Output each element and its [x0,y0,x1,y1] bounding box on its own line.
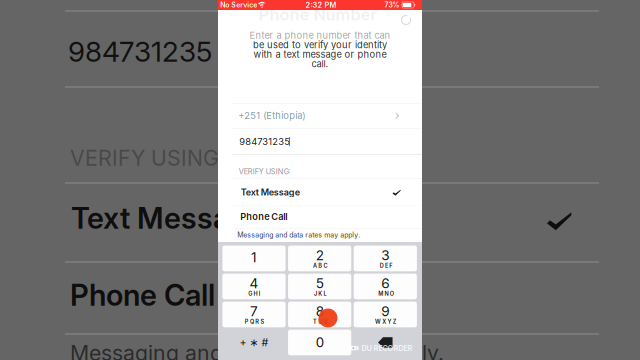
button[interactable]: Delete [354,330,417,355]
staticText: No Service [220,1,257,9]
staticText: 3 [381,247,389,264]
staticText: 6 [381,275,389,292]
staticText: Enter a phone number that can [249,30,390,41]
staticText: 8 [316,303,324,320]
button[interactable]: 2 [288,246,351,271]
button[interactable]: 8 [288,302,351,327]
button[interactable]: Phone Call [218,205,422,228]
staticText: Text Message [241,187,300,198]
staticText: VERIFY USING: [70,145,225,171]
staticText: WXYZ [375,318,397,325]
button[interactable]: +251 (Ethiopia) [218,103,422,128]
staticText: Phone Call [240,211,287,222]
staticText: VERIFY USING: [239,167,291,176]
staticText: Phone Number [258,5,377,24]
staticText: call. [311,58,328,70]
button[interactable]: 6 [354,274,417,299]
staticText: GHI [248,290,261,297]
staticText: 9 [381,303,389,320]
button[interactable]: Symbols [222,330,286,355]
button[interactable]: 9 [354,302,417,327]
staticText: 7 [250,303,258,320]
staticText: with a text message or phone [253,49,386,60]
button[interactable]: 5 [288,274,351,299]
staticText: 73% [384,1,399,9]
staticText: DU RECORDER [361,344,412,353]
staticText: ABC [313,262,327,269]
staticText: Text Message [71,200,264,236]
button[interactable]: 4 [222,274,286,299]
staticText: 2 [316,247,324,264]
staticText: 984731235 [68,35,212,68]
staticText: JKL [314,290,326,297]
staticText: 0 [316,334,324,350]
staticText: TUV [313,318,327,325]
staticText: Messaging and data rates may apply. [237,231,360,239]
staticText: 1 [251,249,257,265]
staticText: 2:32 PM [305,0,336,9]
button[interactable]: 3 [354,246,417,271]
staticText: DEF [380,262,392,269]
button[interactable]: 0 [288,330,351,355]
button[interactable]: 7 [222,302,286,327]
staticText: 5 [316,275,324,292]
staticText: Messaging and data rates may apply. [70,340,444,360]
button[interactable]: 1 [222,246,286,271]
staticText: 4 [249,275,258,292]
staticText: +251 (Ethiopia) [238,110,305,121]
staticText: MNO [378,290,394,297]
staticText: be used to verify your identity [253,39,387,51]
staticText: PQRS [245,318,264,325]
button[interactable]: Text Message [218,179,422,205]
staticText: + ∗ # [239,336,268,349]
staticText: Phone Call [70,277,215,313]
staticText: × [384,336,391,349]
staticText: 984731235 [239,136,290,147]
